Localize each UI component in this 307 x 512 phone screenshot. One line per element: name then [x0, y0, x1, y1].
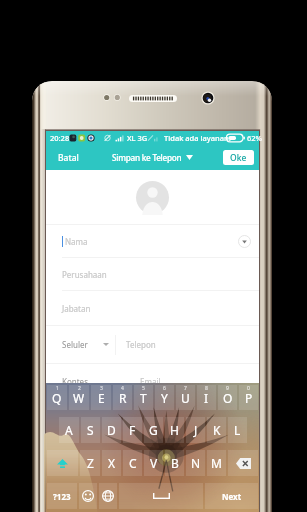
staticText: 8 [205, 385, 208, 392]
staticText: 4 [121, 385, 124, 392]
button[interactable]: M [207, 450, 226, 476]
staticText: 3 [100, 385, 103, 392]
staticText: B [171, 455, 179, 471]
staticText: Kontes [62, 376, 88, 387]
staticText: U [181, 390, 190, 406]
staticText: G [149, 422, 158, 438]
staticText: 0 [247, 385, 250, 392]
button[interactable]: Change keyboard language [99, 483, 117, 509]
staticText: 9 [226, 385, 229, 392]
button[interactable]: H [165, 417, 184, 443]
staticText: 2 [78, 385, 81, 392]
button[interactable]: Space [119, 483, 203, 509]
button[interactable]: Backspace [228, 450, 258, 476]
button[interactable]: Oke [223, 150, 254, 165]
button[interactable]: Z [80, 450, 100, 476]
button[interactable]: D [102, 417, 121, 443]
button[interactable]: Y [155, 385, 174, 410]
staticText: K [213, 422, 221, 438]
staticText: XL 3G [127, 133, 148, 143]
staticText: E [98, 390, 105, 406]
staticText: O [223, 390, 233, 406]
staticText: 20:28 [50, 133, 70, 143]
button[interactable]: S [81, 417, 100, 443]
staticText: Telepon [126, 339, 156, 350]
button[interactable]: T [134, 385, 153, 410]
button[interactable]: F [123, 417, 142, 443]
button[interactable]: K [207, 417, 226, 443]
staticText: 62% [247, 133, 262, 143]
staticText: L [234, 422, 241, 438]
staticText: Email [140, 376, 161, 387]
button[interactable]: ?123 [47, 483, 77, 509]
button[interactable]: R [113, 385, 132, 410]
button[interactable]: Batal [53, 148, 84, 168]
button[interactable]: L [228, 417, 247, 443]
button[interactable]: Q [47, 385, 67, 410]
staticText: Z [87, 455, 94, 471]
button[interactable]: N [186, 450, 205, 476]
staticText: N [191, 455, 201, 471]
button[interactable]: W [69, 385, 89, 410]
button[interactable]: P [239, 385, 258, 410]
button[interactable]: Simpan ke Telepon [108, 148, 197, 167]
staticText: ?123 [53, 491, 71, 502]
staticText: 1 [56, 385, 59, 392]
staticText: 5 [142, 385, 145, 392]
staticText: F [129, 422, 136, 438]
staticText: Simpan ke Telepon [112, 152, 182, 163]
staticText: D [107, 422, 116, 438]
staticText: A [65, 422, 73, 438]
button[interactable]: X [102, 450, 121, 476]
staticText: P [245, 390, 253, 406]
staticText: Next [222, 491, 242, 502]
staticText: 6 [163, 385, 166, 392]
button[interactable]: Shift [47, 450, 78, 476]
staticText: R [119, 390, 127, 406]
staticText: C [129, 455, 137, 471]
staticText: Batal [58, 152, 79, 164]
staticText: S [87, 422, 94, 438]
staticText: W [73, 390, 85, 406]
button[interactable]: A [59, 417, 79, 443]
staticText: T [140, 390, 147, 406]
staticText: Tidak ada layanan. [164, 133, 231, 143]
staticText: 7 [184, 385, 187, 392]
button[interactable]: C [123, 450, 142, 476]
button[interactable]: I [197, 385, 216, 410]
button[interactable]: G [144, 417, 163, 443]
staticText: X [108, 455, 116, 471]
staticText: Oke [230, 152, 247, 164]
staticText: Seluler [62, 339, 88, 350]
button[interactable]: J [186, 417, 205, 443]
other: Expand name fields [238, 235, 251, 248]
button[interactable]: B [165, 450, 184, 476]
staticText: V [150, 455, 158, 471]
staticText: M [211, 455, 222, 471]
button[interactable]: Jabatan [46, 291, 259, 325]
staticText: Jabatan [62, 303, 91, 314]
button[interactable]: V [144, 450, 163, 476]
button[interactable]: O [218, 385, 237, 410]
button[interactable]: Emoji [79, 483, 97, 509]
staticText: H [170, 422, 179, 438]
button[interactable]: Perusahaan [46, 258, 259, 290]
button[interactable]: U [176, 385, 195, 410]
staticText: J [194, 422, 198, 438]
button[interactable]: Nama [46, 225, 259, 257]
staticText: Nama [65, 236, 88, 247]
button[interactable]: E [91, 385, 111, 410]
button[interactable]: Next [205, 483, 258, 509]
button[interactable]: Seluler [62, 339, 115, 350]
staticText: Q [52, 390, 62, 406]
staticText: Y [161, 390, 168, 406]
staticText: Perusahaan [62, 269, 107, 280]
staticText: I [204, 390, 209, 406]
